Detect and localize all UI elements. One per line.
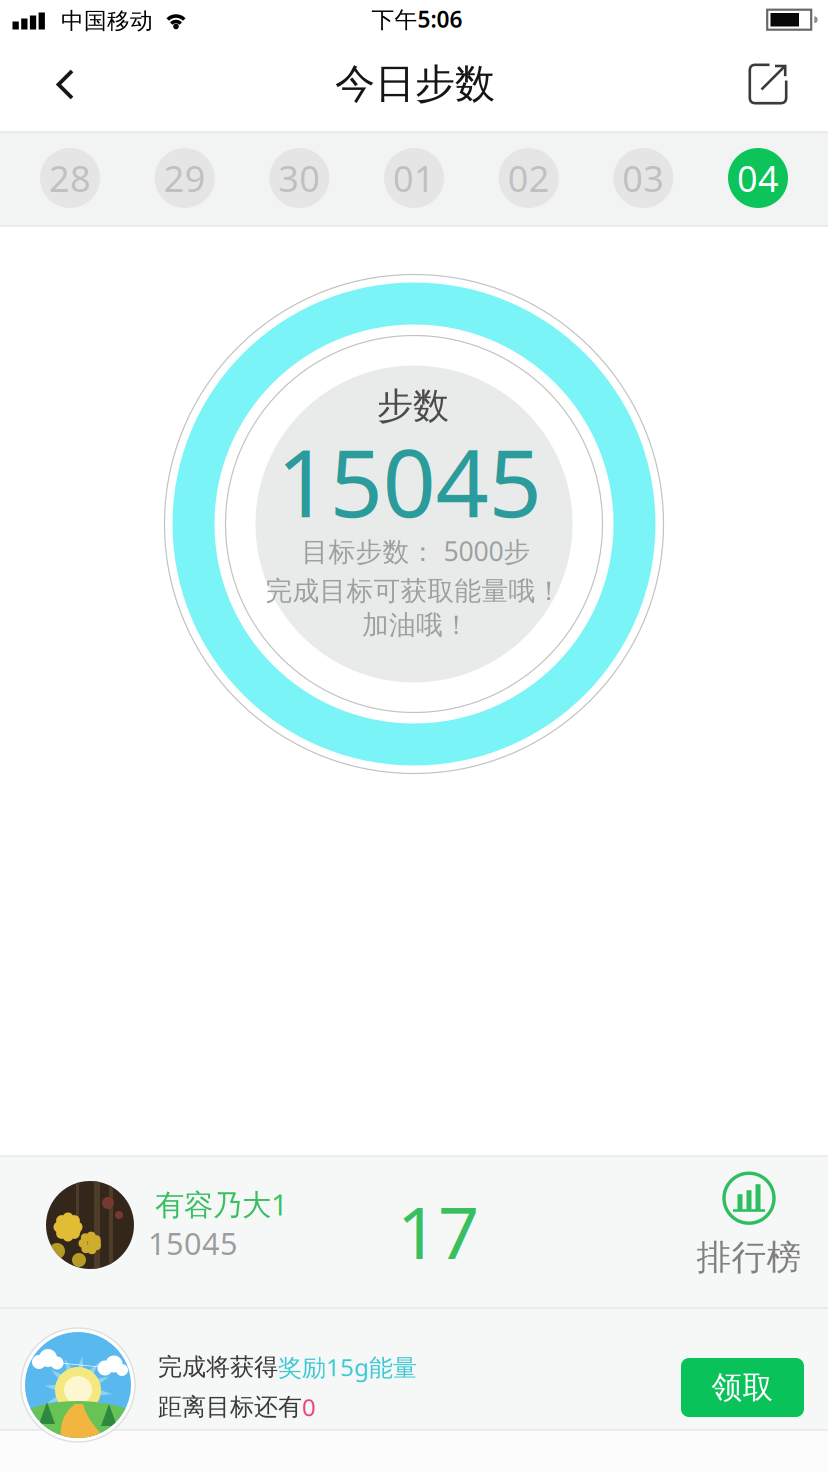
staticText: 排行榜 (696, 1236, 801, 1279)
button[interactable]: Share (736, 51, 799, 116)
staticText: 目标步数： 5000步 (301, 533, 530, 569)
staticText: 下午5:06 (371, 4, 462, 34)
staticText: 01 (393, 154, 435, 202)
staticText: 中国移动 (61, 7, 153, 35)
staticText: 完成将获得 (158, 1352, 278, 1382)
button[interactable]: Day 01 (384, 148, 444, 208)
staticText: 领取 (711, 1369, 773, 1406)
button[interactable]: Day 29 (155, 148, 215, 208)
staticText: 0 (302, 1391, 316, 1423)
button[interactable]: Day 04 (728, 148, 788, 208)
button[interactable]: Day 02 (499, 148, 559, 208)
button[interactable]: 领取 (681, 1358, 804, 1417)
button[interactable]: Day 03 (613, 148, 673, 208)
staticText: 02 (508, 154, 550, 202)
staticText: 今日步数 (335, 59, 495, 108)
staticText: 距离目标还有 (158, 1392, 302, 1422)
staticText: 15045 (276, 419, 541, 543)
staticText: 17 (397, 1183, 479, 1279)
button[interactable]: 排行榜 (696, 1173, 801, 1279)
staticText: 29 (164, 154, 206, 202)
staticText: 03 (622, 154, 664, 202)
button[interactable]: Back (38, 53, 92, 117)
staticText: 有容乃大1 (155, 1184, 288, 1223)
staticText: 15045 (148, 1223, 238, 1263)
staticText: 步数 (377, 384, 449, 428)
button[interactable]: Day 28 (40, 148, 100, 208)
staticText: 30 (278, 154, 320, 202)
staticText: 28 (49, 154, 91, 202)
staticText: 奖励15g能量 (278, 1351, 417, 1383)
staticText: 完成目标可获取能量哦！ (265, 575, 562, 607)
button[interactable]: Day 30 (269, 148, 329, 208)
staticText: 04 (737, 154, 779, 202)
staticText: 加油哦！ (362, 609, 470, 641)
